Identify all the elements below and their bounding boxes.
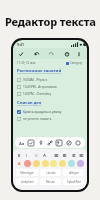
staticText: Linotte	[46, 171, 56, 175]
button[interactable]: Colour 0	[24, 160, 31, 167]
staticText: Купить продукты к ужину	[23, 110, 62, 114]
button[interactable]: Checklist	[27, 139, 35, 147]
button[interactable]: Allegro	[63, 169, 84, 176]
staticText: Category	[70, 61, 83, 65]
button[interactable]: Joséphine	[16, 178, 38, 185]
staticText: 11:30, 12 мая	[17, 61, 36, 65]
button[interactable]: Colour 2	[42, 160, 49, 167]
staticText: Расписание занятий	[17, 68, 62, 74]
button[interactable]: 10:45PM - Астрономия	[17, 83, 83, 90]
staticText: 1:00PM - Chemistry	[23, 92, 52, 96]
button[interactable]: не усппеть помыть	[17, 115, 83, 122]
button[interactable]: Colour 4	[59, 160, 66, 167]
button[interactable]: 1:00PM - Chemistry	[17, 90, 83, 97]
staticText: Allegro	[69, 171, 79, 175]
button[interactable]: Colour 3	[50, 160, 57, 167]
button[interactable]: Align left	[53, 152, 59, 158]
button[interactable]: Draw	[65, 139, 73, 147]
button[interactable]: Linotte	[40, 169, 61, 176]
button[interactable]: Text color	[41, 152, 47, 158]
button[interactable]: Timer	[63, 50, 71, 58]
button[interactable]: SplashFlex	[63, 178, 84, 185]
button[interactable]: Attach	[46, 139, 54, 147]
button[interactable]: Colour 6	[77, 160, 84, 167]
button[interactable]: Museo	[40, 178, 61, 185]
button[interactable]: List	[70, 152, 76, 158]
button[interactable]: Купить продукты к ужину	[17, 108, 83, 115]
button[interactable]: U	[33, 152, 39, 158]
button[interactable]: Done	[17, 50, 25, 58]
button[interactable]: 9:00AM - Physics	[17, 76, 83, 83]
button[interactable]: Undo	[33, 50, 41, 58]
staticText: Museo	[46, 180, 55, 184]
button[interactable]: Colour 1	[33, 160, 40, 167]
button[interactable]: Colour 5	[68, 160, 75, 167]
staticText: B	[18, 153, 21, 158]
staticText: не усппеть помыть	[23, 117, 52, 121]
button[interactable]: Voice	[37, 139, 45, 147]
button[interactable]: Image	[55, 139, 63, 147]
staticText: Список дел	[17, 100, 42, 106]
button[interactable]: B	[16, 152, 22, 158]
staticText: Monotype	[20, 171, 34, 175]
staticText: 9:41	[17, 42, 24, 47]
button[interactable]: Align center	[61, 152, 67, 158]
button[interactable]: Text format	[18, 139, 26, 147]
staticText: A	[18, 161, 21, 166]
button[interactable]: I	[24, 152, 30, 158]
button[interactable]: Monotype	[16, 169, 38, 176]
staticText: Joséphine	[21, 180, 34, 184]
staticText: 9:00AM - Physics	[23, 78, 48, 82]
button[interactable]: Text colour	[16, 160, 22, 166]
button[interactable]: Indent	[78, 152, 84, 158]
staticText: Aa	[19, 141, 25, 146]
button[interactable]: More options	[75, 50, 83, 58]
button[interactable]: Emoji	[74, 139, 82, 147]
staticText: U	[35, 153, 38, 158]
staticText: Редактор текста	[5, 14, 96, 29]
staticText: I	[26, 153, 28, 158]
button[interactable]: Redo	[47, 50, 55, 58]
staticText: SplashFlex	[67, 180, 81, 184]
staticText: 10:45PM - Астрономия	[23, 85, 57, 89]
